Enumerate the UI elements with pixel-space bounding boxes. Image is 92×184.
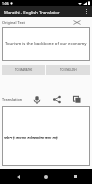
button[interactable]: पर्यटन हे आमच्या अर्थव्यवस्थेचा कणा आहे — [2, 106, 90, 166]
button[interactable]: Copy — [70, 94, 83, 105]
button[interactable]: Speak — [30, 94, 43, 105]
button[interactable]: Recent apps — [64, 169, 86, 184]
staticText: 1:06 — [2, 1, 9, 6]
staticText: Marathi - English Translator — [4, 9, 60, 15]
button[interactable]: Clear text — [71, 18, 83, 27]
button[interactable]: Tourism is the backbone of our economy — [2, 27, 90, 61]
staticText: Tourism is the backbone of our economy — [5, 41, 87, 47]
button[interactable]: TO ENGLISH — [46, 65, 90, 75]
staticText: पर्यटन हे आमच्या अर्थव्यवस्थेचा कणा आहे — [4, 135, 58, 139]
button[interactable]: Share — [50, 94, 63, 105]
staticText: Translation — [2, 97, 23, 102]
button[interactable]: Home — [35, 169, 57, 184]
staticText: TO MARATHI — [15, 68, 33, 72]
button[interactable]: TO MARATHI — [2, 65, 45, 75]
button[interactable]: More options — [81, 6, 92, 17]
staticText: TO ENGLISH — [60, 68, 77, 72]
staticText: Original Text — [2, 20, 26, 25]
button[interactable]: Back — [7, 169, 29, 184]
